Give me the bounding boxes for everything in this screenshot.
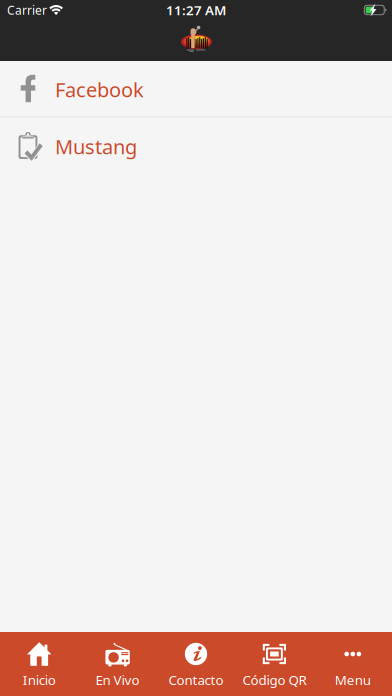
staticText: Mustang: [55, 133, 137, 160]
staticText: Contacto: [168, 671, 223, 689]
staticText: Facebook: [55, 76, 144, 103]
staticText: Inicio: [23, 671, 56, 689]
button[interactable]: Mustang: [0, 118, 392, 173]
button[interactable]: Contacto: [157, 632, 235, 696]
staticText: Carrier: [7, 2, 47, 18]
button[interactable]: Inicio: [0, 632, 78, 696]
button[interactable]: Menu: [314, 632, 392, 696]
staticText: En Vivo: [96, 671, 140, 689]
button[interactable]: Facebook: [0, 61, 392, 116]
staticText: Menu: [335, 671, 371, 689]
button[interactable]: En Vivo: [78, 632, 157, 696]
button[interactable]: Código QR: [235, 632, 314, 696]
staticText: 11:27 AM: [166, 1, 226, 19]
staticText: Código QR: [242, 671, 306, 689]
